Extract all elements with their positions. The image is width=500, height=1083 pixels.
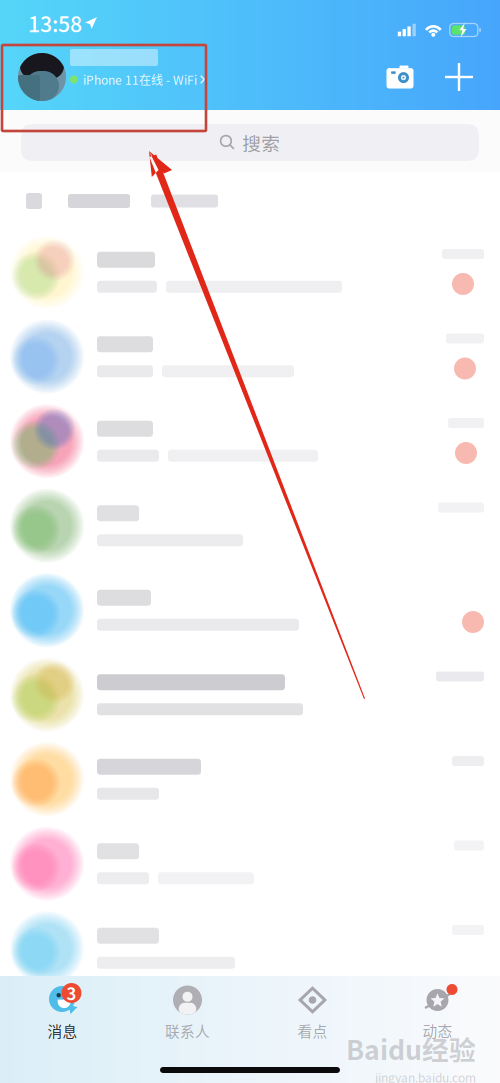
button[interactable]: iPhone 11在线 - WiFi xyxy=(0,46,206,108)
button[interactable]: 看点 xyxy=(250,976,375,1046)
button[interactable]: 动态 xyxy=(375,976,500,1046)
button[interactable]: 搜索 xyxy=(21,124,479,161)
staticText: 动态 xyxy=(422,1020,452,1041)
staticText: iPhone 11在线 - WiFi xyxy=(83,71,197,88)
staticText: jingyan.baidu.com xyxy=(375,1069,476,1083)
staticText: 联系人 xyxy=(165,1020,210,1041)
button[interactable]: Add xyxy=(437,46,481,108)
staticText: Baidu经验 xyxy=(346,1029,476,1068)
button[interactable]: 联系人 xyxy=(125,976,250,1046)
staticText: 看点 xyxy=(297,1020,327,1041)
button[interactable] xyxy=(0,821,500,906)
button[interactable] xyxy=(0,568,500,652)
button[interactable]: 3 xyxy=(0,976,125,1046)
staticText: 13:58 xyxy=(28,8,82,38)
button[interactable] xyxy=(0,737,500,821)
button[interactable] xyxy=(0,230,500,314)
button[interactable] xyxy=(0,906,500,990)
button[interactable]: Camera xyxy=(377,46,423,108)
button[interactable] xyxy=(0,652,500,737)
button[interactable] xyxy=(0,399,500,483)
staticText: 搜索 xyxy=(242,129,280,156)
staticText: 3 xyxy=(66,981,76,1005)
button[interactable] xyxy=(0,483,500,568)
staticText: 消息 xyxy=(47,1020,77,1041)
button[interactable] xyxy=(0,314,500,399)
